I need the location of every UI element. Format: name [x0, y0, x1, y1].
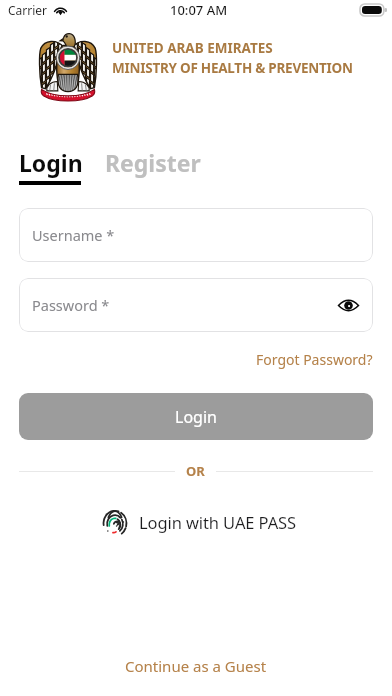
other: Show password	[338, 299, 359, 312]
button[interactable]: Login	[19, 393, 373, 440]
staticText: Password *	[32, 295, 110, 315]
staticText: MINISTRY OF HEALTH & PREVENTION	[112, 59, 353, 77]
staticText: OR	[186, 462, 205, 480]
staticText: Login with UAE PASS	[139, 511, 297, 533]
staticText: Username *	[32, 225, 115, 245]
button[interactable]: Continue as a Guest	[113, 650, 279, 682]
button[interactable]: Register	[105, 147, 205, 178]
button[interactable]: Login	[19, 147, 85, 185]
button[interactable]: Forgot Password?	[254, 346, 375, 373]
staticText: Carrier	[8, 2, 48, 18]
staticText: Forgot Password?	[256, 350, 373, 369]
staticText: Register	[105, 147, 201, 178]
staticText: Continue as a Guest	[125, 656, 267, 676]
button[interactable]: Username *	[19, 208, 373, 262]
staticText: Login	[19, 147, 83, 178]
staticText: Login	[175, 406, 217, 428]
button[interactable]: Password *	[19, 278, 373, 332]
button[interactable]: Login with UAE PASS	[94, 502, 305, 542]
staticText: UNITED ARAB EMIRATES	[112, 39, 273, 57]
staticText: 10:07 AM	[170, 1, 228, 19]
